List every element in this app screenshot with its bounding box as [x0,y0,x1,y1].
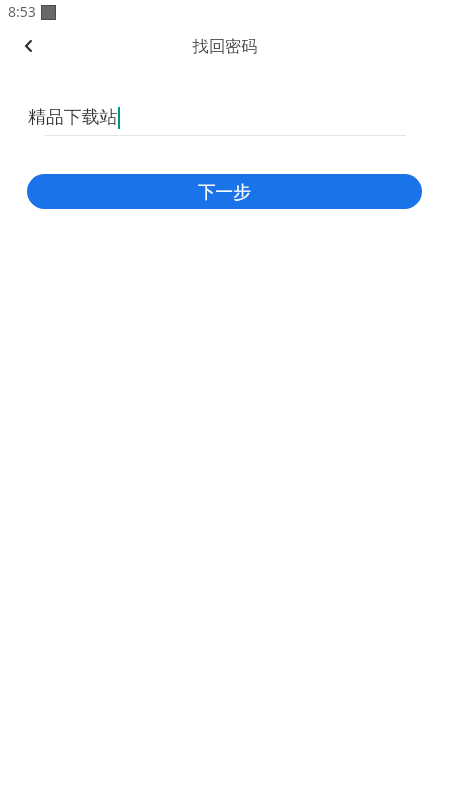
staticText: 找回密码 [0,36,450,57]
staticText: 8:53 [8,2,36,18]
staticText: 精品下载站 [28,106,118,129]
staticText: 下一步 [198,181,251,203]
button[interactable]: 下一步 [27,174,422,209]
button[interactable]: Back [12,30,44,62]
button[interactable]: Account input field [27,102,406,136]
